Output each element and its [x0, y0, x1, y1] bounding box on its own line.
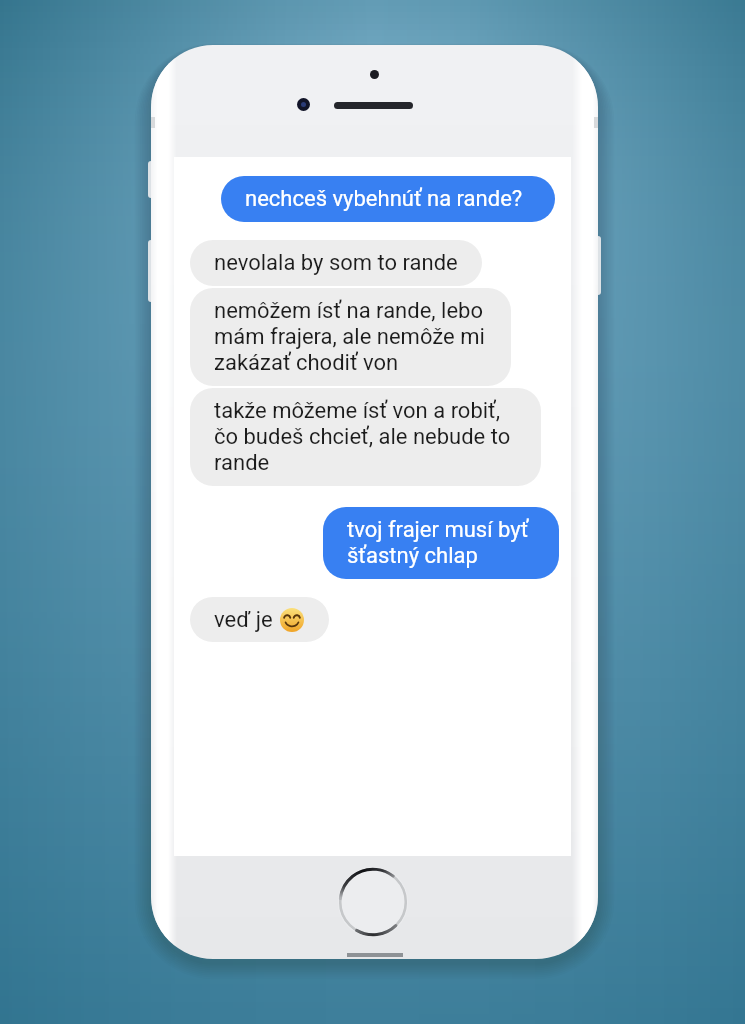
button[interactable]: veď je	[190, 597, 329, 642]
button[interactable]: Home	[338, 867, 408, 937]
staticText: nechceš vybehnúť na rande?	[245, 186, 523, 212]
staticText: nemôžem ísť na rande, lebo mám frajera, …	[214, 298, 487, 376]
button[interactable]: nechceš vybehnúť na rande?	[221, 176, 555, 222]
button[interactable]: nevolala by som to rande	[190, 240, 482, 286]
button[interactable]: takže môžeme ísť von a robiť, čo budeš c…	[190, 388, 541, 486]
staticText: veď je	[214, 607, 273, 633]
staticText: nevolala by som to rande	[214, 250, 458, 276]
button[interactable]: nemôžem ísť na rande, lebo mám frajera, …	[190, 288, 511, 386]
staticText: tvoj frajer musí byť šťastný chlap	[347, 517, 535, 569]
staticText: takže môžeme ísť von a robiť, čo budeš c…	[214, 398, 517, 476]
button[interactable]: tvoj frajer musí byť šťastný chlap	[323, 507, 559, 579]
